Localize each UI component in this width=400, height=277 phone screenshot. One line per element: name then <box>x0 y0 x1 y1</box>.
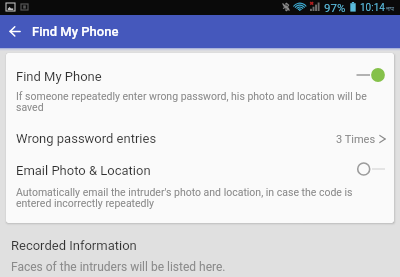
staticText: Recorded Information <box>11 238 137 253</box>
staticText: Automatically email the intruder's photo… <box>16 186 353 209</box>
button[interactable]: Wrong password entries <box>6 115 394 147</box>
staticText: If someone repeatedly enter wrong passwo… <box>16 90 367 113</box>
button[interactable]: Email Photo and Location toggle, off <box>350 158 386 180</box>
staticText: 3 Times <box>336 133 376 146</box>
staticText: Faces of the intruders will be listed he… <box>11 260 226 274</box>
button[interactable]: Email Photo & Location <box>6 147 394 209</box>
staticText: नप <box>386 4 394 14</box>
staticText: Wrong password entries <box>16 131 157 146</box>
staticText: Email Photo & Location <box>16 163 151 178</box>
staticText: Find My Phone <box>32 24 119 39</box>
staticText: 97% <box>324 1 346 14</box>
staticText: Find My Phone <box>16 69 102 84</box>
button[interactable]: Back <box>1 15 29 48</box>
button[interactable]: Find My Phone <box>6 53 394 115</box>
staticText: 10:14 <box>360 2 385 14</box>
button[interactable]: Find My Phone toggle, on <box>350 64 386 86</box>
